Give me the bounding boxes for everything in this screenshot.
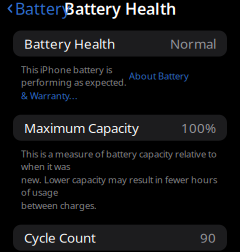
staticText: This iPhone battery is performing as exp… xyxy=(21,63,129,88)
button[interactable]: Battery xyxy=(0,0,70,23)
staticText: About Battery xyxy=(129,70,189,82)
staticText: Normal xyxy=(170,35,216,52)
button[interactable]: Battery Health xyxy=(13,30,227,56)
staticText: 90 xyxy=(200,229,216,246)
staticText: new. Lower capacity may result in fewer … xyxy=(21,173,217,198)
staticText: & Warranty... xyxy=(21,89,78,102)
staticText: This is a measure of battery capacity re… xyxy=(21,148,217,172)
staticText: between charges. xyxy=(21,199,97,212)
button[interactable]: Maximum Capacity xyxy=(13,115,227,141)
staticText: 100% xyxy=(181,119,216,137)
staticText: Maximum Capacity xyxy=(24,119,139,137)
staticText: Cycle Count xyxy=(24,229,96,246)
staticText: Battery Health xyxy=(24,35,115,52)
staticText: Battery Health xyxy=(64,0,176,19)
button[interactable]: Cycle Count xyxy=(13,225,227,251)
staticText: Battery xyxy=(15,0,70,19)
